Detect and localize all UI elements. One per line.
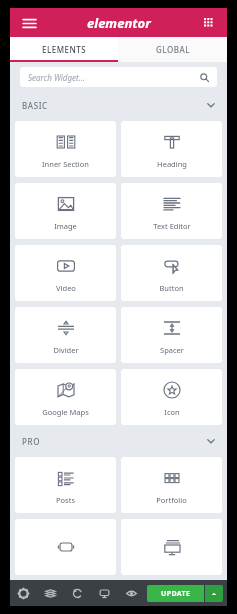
button[interactable]: Google Maps — [15, 369, 116, 425]
staticText: Inner Section — [42, 159, 89, 169]
button[interactable]: Responsive Mode — [91, 580, 118, 606]
button[interactable]: gallery — [121, 519, 222, 575]
staticText: Heading — [157, 159, 187, 169]
staticText: GLOBAL — [156, 44, 190, 55]
button[interactable]: UPDATE — [147, 585, 204, 602]
button[interactable]: Spacer — [121, 307, 222, 363]
staticText: Image — [54, 221, 77, 231]
staticText: BASIC — [22, 100, 207, 111]
button[interactable]: Apps grid — [199, 13, 219, 33]
staticText: Divider — [53, 345, 79, 355]
staticText: Text Editor — [153, 221, 191, 231]
staticText: ELEMENTS — [42, 44, 87, 55]
button[interactable]: Navigator — [37, 580, 64, 606]
staticText: Posts — [56, 495, 75, 505]
staticText: elementor — [87, 14, 151, 32]
button[interactable]: Inner Section — [15, 121, 116, 177]
button[interactable]: slides — [15, 519, 116, 575]
staticText: Search Widget... — [28, 72, 200, 83]
button[interactable]: PRO — [10, 428, 227, 454]
button[interactable]: More options — [205, 585, 223, 602]
staticText: Google Maps — [42, 407, 89, 417]
button[interactable]: BASIC — [10, 92, 227, 118]
button[interactable]: Button — [121, 245, 222, 301]
staticText: Portfolio — [156, 495, 187, 505]
staticText: UPDATE — [161, 589, 191, 599]
button[interactable]: Text Editor — [121, 183, 222, 239]
button[interactable]: GLOBAL — [118, 37, 227, 62]
button[interactable]: Settings — [10, 580, 37, 606]
staticText: Button — [159, 283, 184, 293]
button[interactable]: Portfolio — [121, 457, 222, 513]
button[interactable]: History — [64, 580, 91, 606]
button[interactable]: ELEMENTS — [10, 37, 118, 62]
button[interactable]: Video — [15, 245, 116, 301]
staticText: PRO — [22, 436, 207, 447]
button[interactable]: Icon — [121, 369, 222, 425]
staticText: Icon — [164, 407, 180, 417]
button[interactable]: Posts — [15, 457, 116, 513]
button[interactable]: Preview — [118, 580, 145, 606]
button[interactable]: Heading — [121, 121, 222, 177]
button[interactable]: Divider — [15, 307, 116, 363]
button[interactable]: Menu — [18, 12, 40, 34]
staticText: Video — [56, 283, 76, 293]
button[interactable]: Search Widget... — [20, 67, 217, 87]
button[interactable]: Image — [15, 183, 116, 239]
staticText: Spacer — [160, 345, 184, 355]
